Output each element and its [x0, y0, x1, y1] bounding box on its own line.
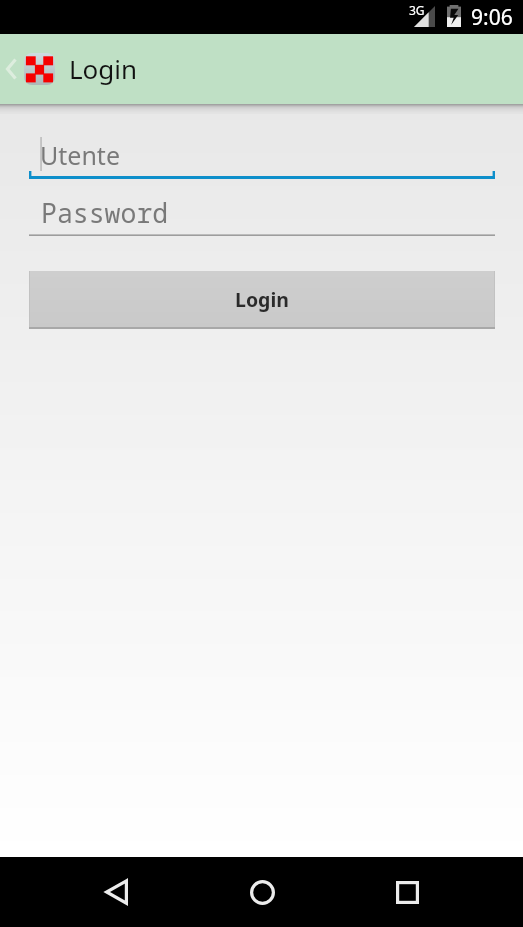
staticText: Utente	[40, 138, 120, 172]
staticText: Password	[41, 195, 169, 231]
staticText: 3G	[409, 2, 425, 18]
button[interactable]: Back	[0, 34, 23, 104]
button[interactable]: Back	[81, 857, 151, 927]
button[interactable]: Utente	[29, 132, 495, 179]
button[interactable]: Recent apps	[372, 857, 442, 927]
staticText: Login	[235, 286, 289, 313]
staticText: Login	[69, 51, 138, 86]
button[interactable]: Home	[227, 857, 297, 927]
staticText: 9:06	[471, 3, 513, 32]
button[interactable]: Password	[29, 189, 495, 236]
button[interactable]: Login	[29, 271, 495, 329]
